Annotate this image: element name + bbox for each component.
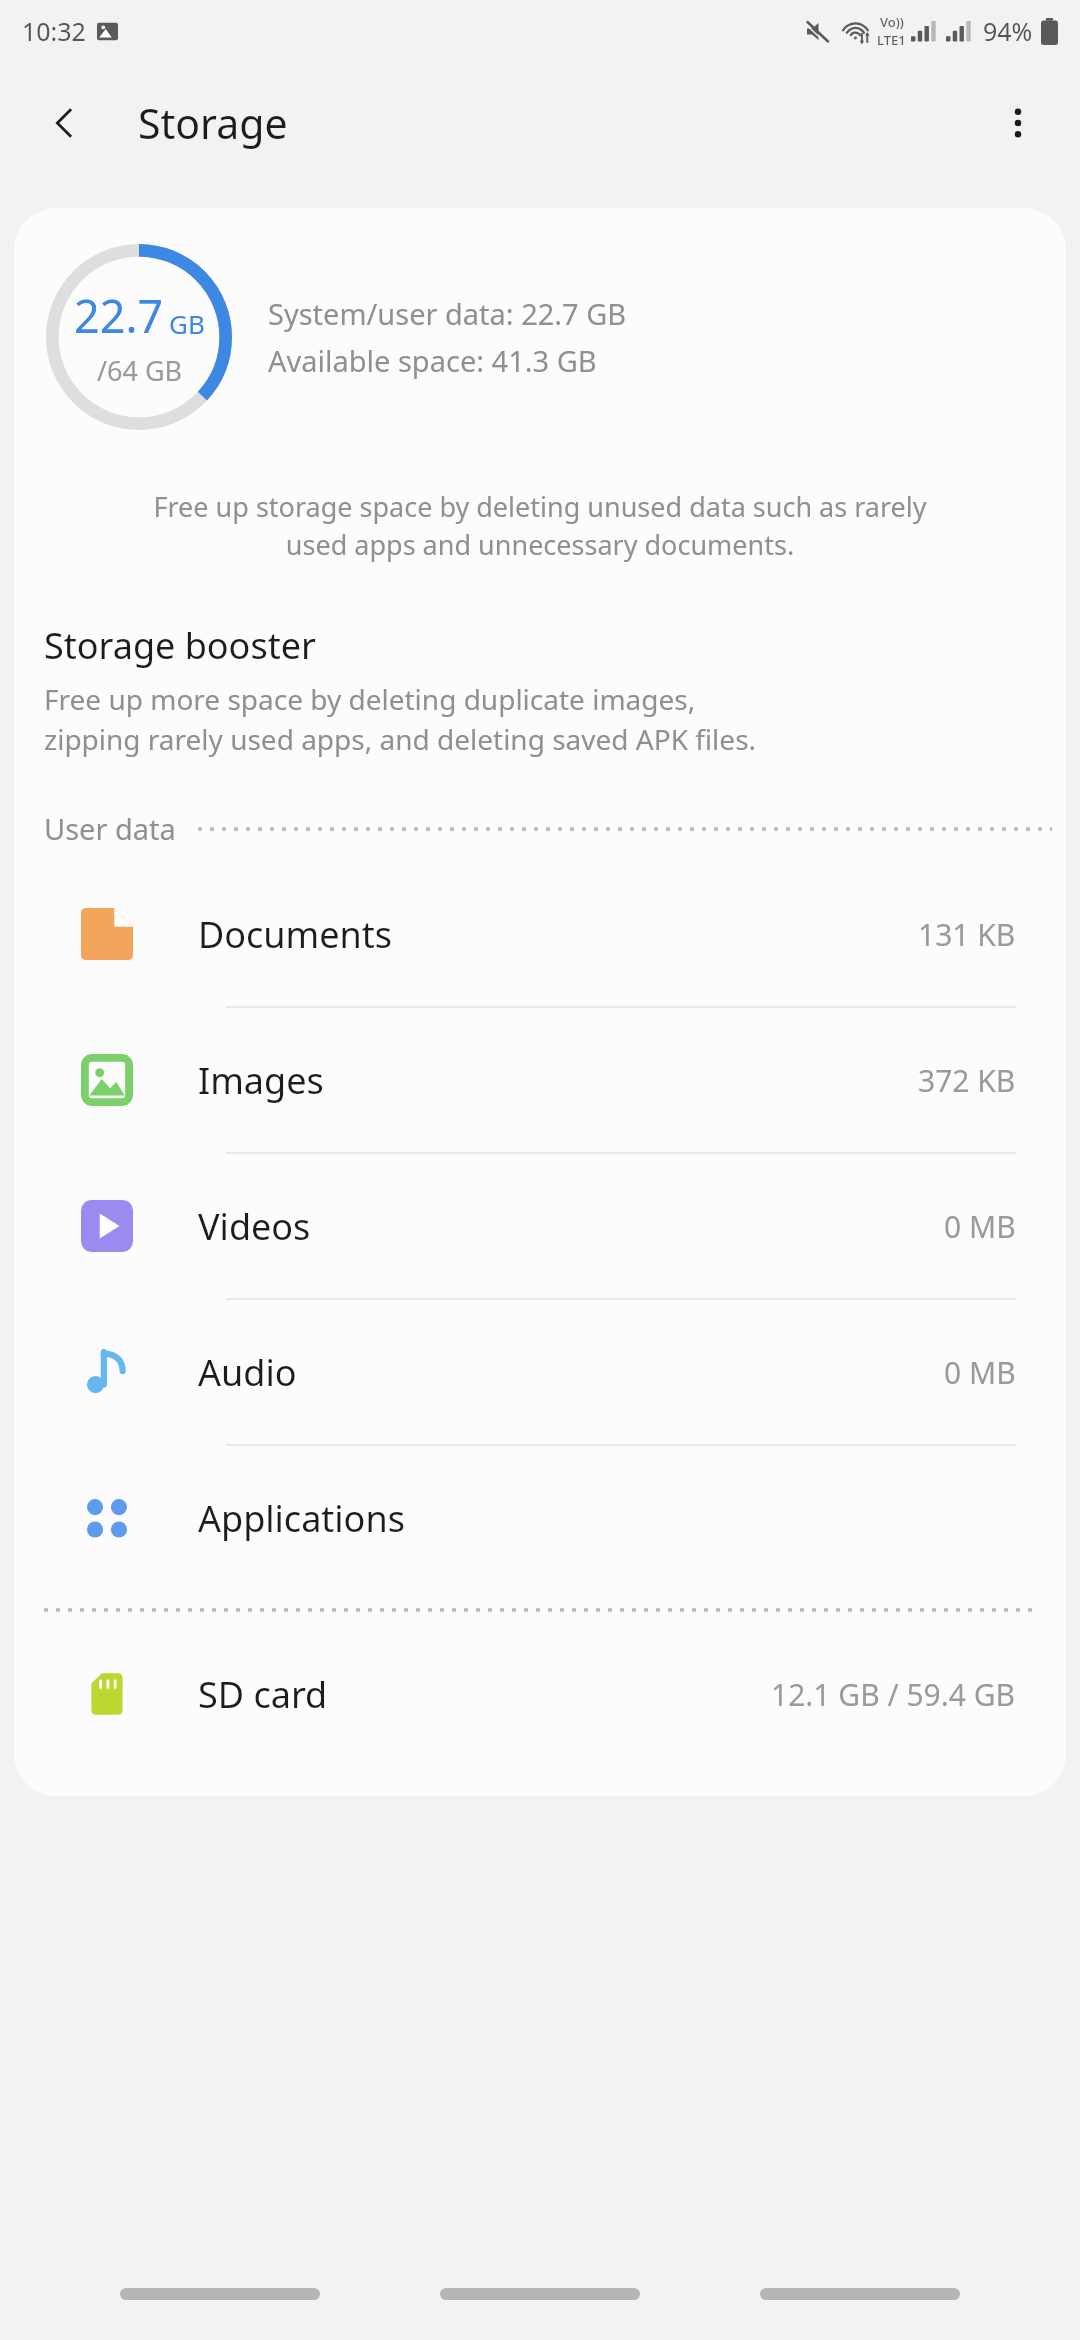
staticText: 131 KB — [918, 914, 1016, 955]
staticText: GB — [169, 306, 205, 341]
button[interactable]: Home — [440, 2270, 640, 2318]
staticText: 0 MB — [944, 1206, 1016, 1247]
staticText: Available space: 41.3 GB — [268, 341, 597, 380]
button[interactable]: Audio — [14, 1300, 1066, 1444]
button[interactable]: Recents — [120, 2270, 320, 2318]
staticText: Free up more space by deleting duplicate… — [44, 680, 757, 759]
staticText: Videos — [198, 1202, 311, 1251]
staticText: LTE1 — [877, 31, 906, 49]
staticText: /64 GB — [97, 352, 183, 389]
button[interactable]: Storage booster — [14, 617, 1066, 763]
button[interactable]: Back — [760, 2270, 960, 2318]
button[interactable]: Videos — [14, 1154, 1066, 1298]
staticText: 22.7 — [74, 285, 164, 346]
staticText: Vo)) — [880, 13, 904, 31]
staticText: 372 KB — [918, 1060, 1016, 1101]
button[interactable]: More options — [986, 91, 1050, 155]
staticText: Storage booster — [44, 621, 316, 670]
staticText: User data — [44, 809, 176, 848]
staticText: Audio — [198, 1348, 297, 1397]
button[interactable]: Back — [36, 94, 94, 152]
button[interactable]: Applications — [14, 1446, 1066, 1590]
staticText: 94% — [983, 14, 1033, 48]
button[interactable]: Documents — [14, 862, 1066, 1006]
staticText: 0 MB — [944, 1352, 1016, 1393]
staticText: Documents — [198, 910, 393, 959]
staticText: SD card — [198, 1670, 328, 1719]
staticText: Applications — [198, 1494, 405, 1543]
staticText: 10:32 — [22, 14, 86, 48]
staticText: Images — [198, 1056, 324, 1105]
button[interactable]: Images — [14, 1008, 1066, 1152]
staticText: 12.1 GB / 59.4 GB — [771, 1674, 1016, 1715]
staticText: Free up storage space by deleting unused… — [56, 488, 1024, 563]
staticText: Storage — [138, 95, 288, 151]
staticText: System/user data: 22.7 GB — [268, 294, 627, 333]
button[interactable]: SD card — [14, 1622, 1066, 1766]
